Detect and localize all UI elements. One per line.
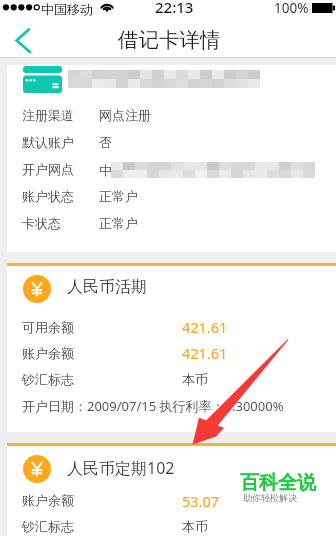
staticText: 账户状态 — [22, 188, 74, 204]
staticText: 账户余额 — [22, 345, 74, 361]
staticText: 正常户 — [99, 188, 138, 204]
staticText: 中国移动 — [41, 1, 93, 17]
staticText: 正常户 — [99, 215, 138, 231]
staticText: 开户日期：2009/07/15 执行利率：0.30000% — [22, 397, 284, 415]
staticText: 默认账户 — [22, 134, 74, 150]
staticText: 421.61 — [182, 343, 228, 363]
staticText: 人民币定期102 — [67, 457, 175, 479]
staticText: 卡状态 — [22, 215, 61, 231]
staticText: 网点注册 — [99, 107, 151, 123]
staticText: 53.07 — [182, 491, 220, 511]
staticText: 借记卡详情 — [118, 27, 221, 53]
staticText: 助你轻松解决 — [243, 492, 297, 503]
staticText: 人民币活期 — [67, 277, 147, 297]
staticText: 钞汇标志 — [22, 371, 74, 387]
staticText: 开户网点 — [22, 161, 74, 177]
staticText: 100% — [274, 0, 309, 17]
staticText: 可用余额 — [22, 319, 74, 335]
staticText: 钞汇标志 — [22, 518, 74, 534]
button[interactable] — [7, 65, 336, 252]
staticText: 本币 — [182, 518, 208, 534]
staticText: 百科全说 — [240, 471, 316, 495]
button[interactable]: Back — [0, 22, 46, 58]
staticText: 本币 — [182, 371, 208, 387]
staticText: 421.61 — [182, 317, 228, 337]
staticText: 注册渠道 — [22, 107, 74, 123]
staticText: 否 — [99, 134, 112, 150]
staticText: 22:13 — [155, 0, 194, 17]
staticText: 中 商业银行 — [99, 161, 171, 179]
staticText: 账户余额 — [22, 492, 74, 508]
